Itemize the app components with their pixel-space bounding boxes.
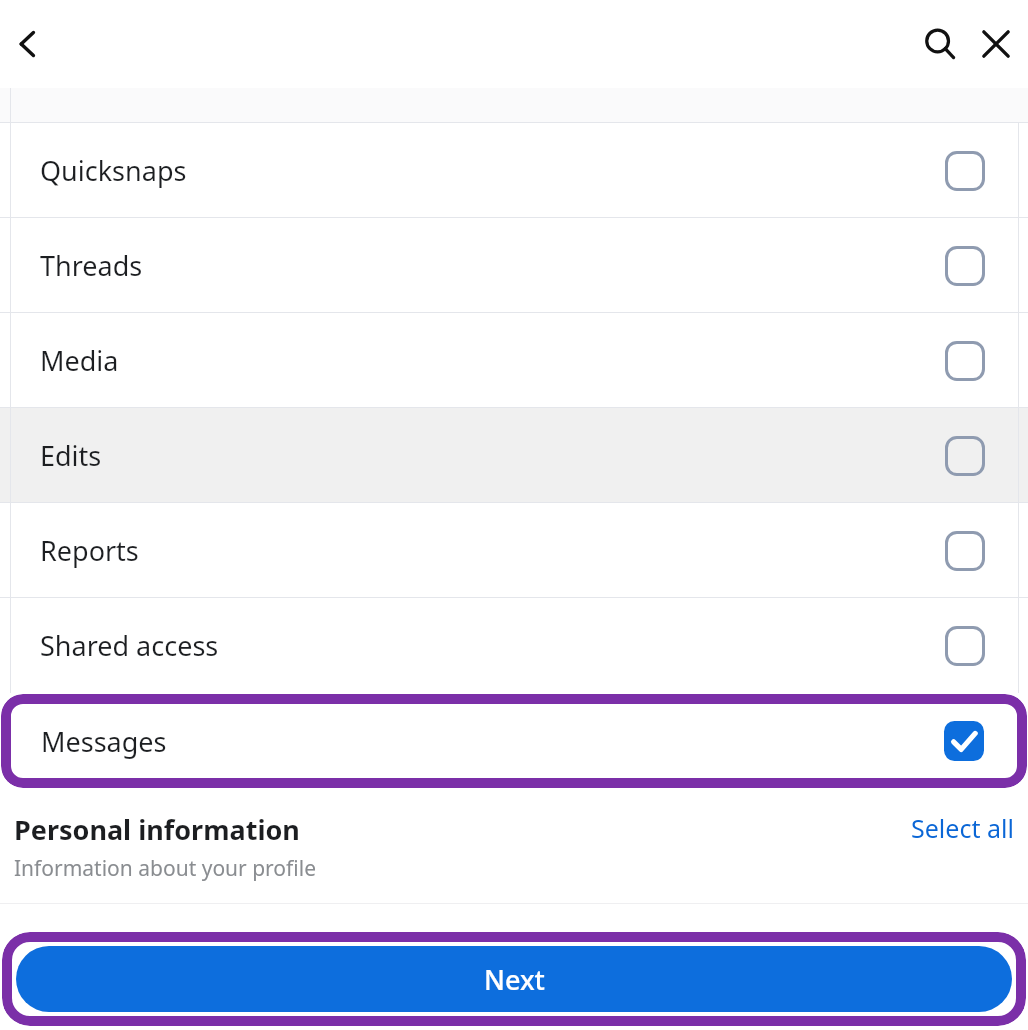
button[interactable]: Threads	[0, 218, 1028, 313]
staticText: Select all	[911, 811, 1014, 845]
staticText: Messages	[41, 723, 167, 760]
button[interactable]: Quicksnaps	[0, 123, 1028, 218]
staticText: Media	[40, 342, 119, 379]
staticText: Shared access	[40, 627, 219, 664]
button[interactable]: Next	[16, 946, 1012, 1012]
button[interactable]: Select all	[905, 807, 1020, 849]
button[interactable]: Not selected	[944, 625, 986, 667]
staticText: Quicksnaps	[40, 152, 187, 189]
staticText: Next	[484, 961, 545, 998]
button[interactable]: Back	[2, 18, 54, 70]
button[interactable]: Close	[968, 16, 1024, 72]
button[interactable]: Reports	[0, 503, 1028, 598]
button[interactable]: Media	[0, 313, 1028, 408]
staticText: Threads	[40, 247, 143, 284]
staticText: Reports	[40, 532, 139, 569]
staticText: Personal information	[14, 811, 300, 848]
button[interactable]: Not selected	[944, 150, 986, 192]
button[interactable]: Not selected	[944, 435, 986, 477]
button[interactable]: Not selected	[944, 340, 986, 382]
button[interactable]: Search	[912, 16, 968, 72]
button[interactable]: Not selected	[944, 245, 986, 287]
button[interactable]: Selected	[943, 720, 985, 762]
button[interactable]: Shared access	[0, 598, 1028, 693]
staticText: Information about your profile	[14, 854, 316, 883]
button[interactable]: Edits	[0, 408, 1028, 503]
button[interactable]: Not selected	[944, 530, 986, 572]
staticText: Edits	[40, 437, 102, 474]
button[interactable]: Messages	[1, 694, 1027, 788]
